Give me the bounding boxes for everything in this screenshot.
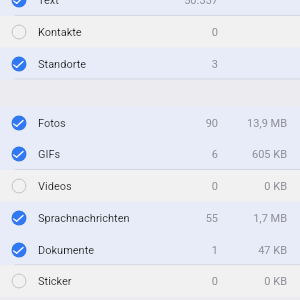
staticText: Sticker [38, 275, 72, 288]
other: Not selected [11, 273, 27, 289]
staticText: Sprachnachrichten [38, 212, 130, 225]
button[interactable]: Not selected [0, 170, 300, 202]
other: Selected [11, 115, 27, 131]
staticText: 13,9 MB [245, 117, 287, 130]
staticText: 3 [178, 58, 218, 71]
staticText: 1 [178, 244, 218, 257]
button[interactable]: Not selected [0, 16, 300, 48]
staticText: GIFs [38, 148, 61, 161]
other: Selected [11, 242, 27, 258]
staticText: 50.337 [178, 0, 218, 7]
staticText: 1,7 MB [245, 212, 287, 225]
staticText: 6 [178, 148, 218, 161]
staticText: Standorte [38, 58, 87, 71]
staticText: 90 [178, 117, 218, 130]
staticText: Fotos [38, 117, 66, 130]
button[interactable]: Selected [0, 138, 300, 170]
staticText: 0 [178, 275, 218, 288]
staticText: Kontakte [38, 26, 82, 39]
staticText: 0 KB [245, 275, 287, 288]
staticText: 0 [178, 180, 218, 193]
button[interactable]: Selected [0, 234, 300, 266]
staticText: Videos [38, 180, 72, 193]
button[interactable]: Not selected [0, 265, 300, 297]
other: Selected [11, 0, 27, 8]
staticText: 0 KB [245, 180, 287, 193]
staticText: 47 KB [245, 244, 287, 257]
staticText: 0 [178, 26, 218, 39]
other: Selected [11, 56, 27, 72]
staticText: Text [38, 0, 59, 7]
other: Not selected [11, 178, 27, 194]
staticText: 55 [178, 212, 218, 225]
button[interactable]: Selected [0, 0, 300, 16]
button[interactable]: Selected [0, 202, 300, 234]
other: Selected [11, 146, 27, 162]
other: Selected [11, 210, 27, 226]
button[interactable]: Selected [0, 107, 300, 139]
staticText: 605 KB [245, 148, 287, 161]
staticText: Dokumente [38, 244, 95, 257]
button[interactable]: Selected [0, 48, 300, 80]
other: Not selected [11, 24, 27, 40]
